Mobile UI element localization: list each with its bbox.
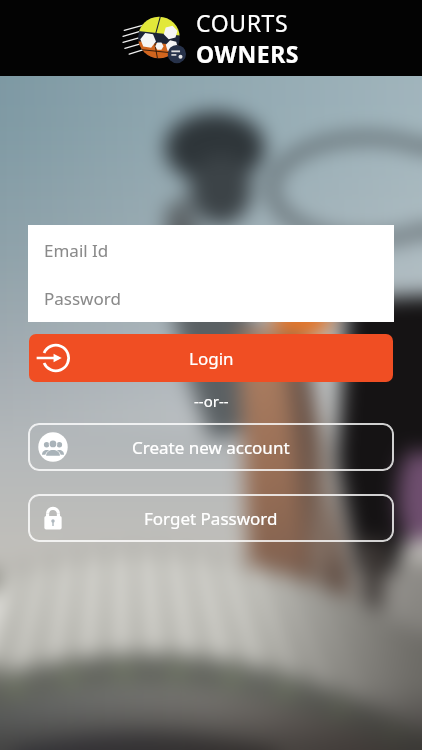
staticText: Login [189,347,234,370]
button[interactable]: Login [29,334,393,382]
button[interactable]: Email Id [44,225,394,275]
staticText: OWNERS [196,38,300,69]
staticText: Create new account [132,436,290,459]
staticText: Password [44,287,121,310]
button[interactable]: Create new account [28,423,394,471]
staticText: Email Id [44,239,109,262]
staticText: Forget Password [144,507,278,530]
staticText: COURTS [196,7,289,38]
button[interactable]: Forget Password [28,494,394,542]
button[interactable]: Password [44,275,394,322]
staticText: --or-- [194,391,229,411]
